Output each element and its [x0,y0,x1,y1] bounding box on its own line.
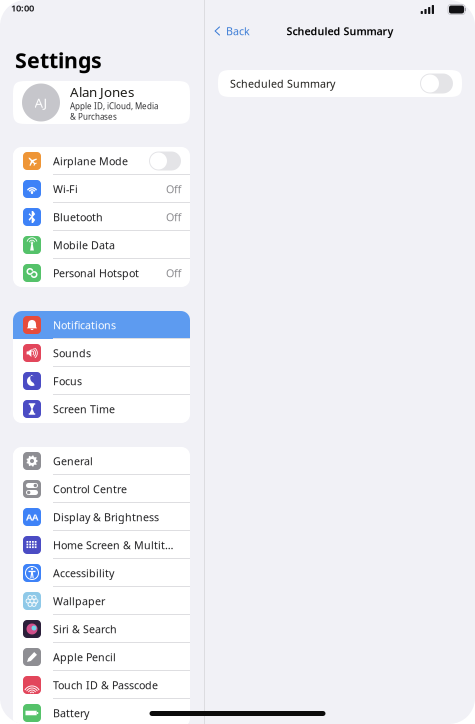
staticText: 10:00 [11,2,34,14]
button[interactable]: Bluetooth [13,203,190,231]
staticText: Touch ID & Passcode [53,678,158,692]
staticText: Wallpaper [53,594,105,608]
staticText: Wi-Fi [53,182,78,196]
staticText: Bluetooth [53,210,103,224]
staticText: Control Centre [53,482,127,496]
staticText: Home Screen & Multitas… [53,538,177,552]
button[interactable]: Airplane Mode [13,147,190,175]
staticText: Battery [53,706,89,720]
staticText: Off [166,210,181,224]
button[interactable]: Notifications [13,311,190,339]
button[interactable]: Accessibility [13,559,190,587]
button[interactable]: AA [13,503,190,531]
staticText: Scheduled Summary [286,24,393,38]
button[interactable]: General [13,447,190,475]
button[interactable]: Wi-Fi [13,175,190,203]
staticText: Mobile Data [53,238,115,252]
button[interactable]: Home Screen & Multitas… [13,531,190,559]
button[interactable]: Control Centre [13,475,190,503]
staticText: Back [226,24,250,38]
button[interactable]: Scheduled Summary [218,70,462,97]
button[interactable]: Back [214,24,254,38]
button[interactable]: Wallpaper [13,587,190,615]
staticText: AA [26,511,38,523]
staticText: Apple ID, iCloud, Media [70,101,158,111]
staticText: Notifications [53,318,116,332]
staticText: Off [166,266,181,280]
button[interactable]: Focus [13,367,190,395]
button[interactable]: Screen Time [13,395,190,423]
staticText: Focus [53,374,82,388]
staticText: Scheduled Summary [230,76,335,91]
button[interactable]: Personal Hotspot [13,259,190,287]
staticText: Settings [15,46,102,74]
staticText: & Purchases [70,111,117,122]
button[interactable]: Battery [13,699,190,724]
button[interactable]: Touch ID & Passcode [13,671,190,699]
button[interactable]: Apple Pencil [13,643,190,671]
staticText: Accessibility [53,566,114,580]
button[interactable]: Mobile Data [13,231,190,259]
staticText: AJ [34,94,47,111]
staticText: Airplane Mode [53,154,128,168]
staticText: Sounds [53,346,91,360]
staticText: Alan Jones [70,83,134,101]
staticText: Display & Brightness [53,510,159,524]
button[interactable]: AJ [13,81,190,124]
staticText: Screen Time [53,402,115,416]
staticText: General [53,454,93,468]
staticText: Siri & Search [53,622,117,636]
button[interactable]: Sounds [13,339,190,367]
staticText: Personal Hotspot [53,266,139,280]
staticText: Apple Pencil [53,650,116,664]
button[interactable]: Siri & Search [13,615,190,643]
staticText: Off [166,182,181,196]
